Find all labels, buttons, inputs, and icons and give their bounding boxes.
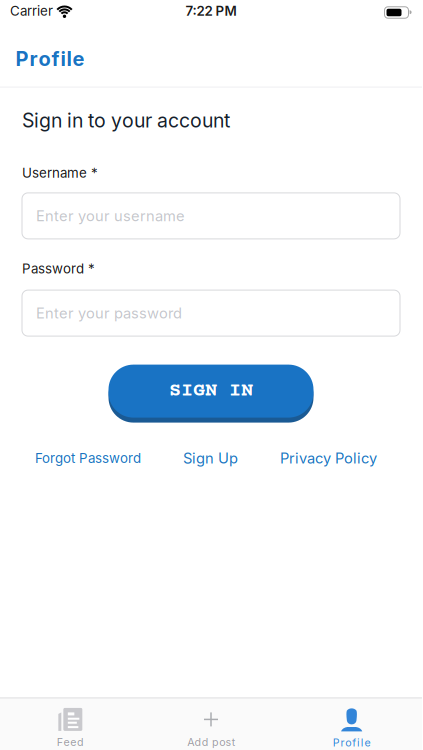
staticText: Username * <box>22 165 98 181</box>
staticText: SIGN IN <box>169 380 253 402</box>
button[interactable]: SIGN IN <box>108 365 313 423</box>
staticText: Privacy Policy <box>280 450 377 467</box>
staticText: Profile <box>15 47 84 71</box>
staticText: Profile <box>333 736 371 749</box>
staticText: Enter your password <box>36 304 182 322</box>
button[interactable]: Sign Up <box>183 450 238 467</box>
staticText: Forgot Password <box>35 450 141 466</box>
staticText: Sign Up <box>183 450 238 467</box>
staticText: Add post <box>187 736 235 748</box>
button[interactable]: Forgot Password <box>35 450 141 466</box>
staticText: 7:22 PM <box>185 3 236 19</box>
staticText: Sign in to your account <box>22 109 230 132</box>
button[interactable]: Feed <box>0 708 141 748</box>
staticText: Password * <box>22 261 95 277</box>
button[interactable]: Privacy Policy <box>280 450 377 467</box>
staticText: Enter your username <box>36 207 185 224</box>
button[interactable]: Profile <box>281 707 422 749</box>
button[interactable]: Add post <box>141 708 281 748</box>
staticText: Feed <box>57 736 84 748</box>
staticText: Carrier <box>10 3 53 19</box>
